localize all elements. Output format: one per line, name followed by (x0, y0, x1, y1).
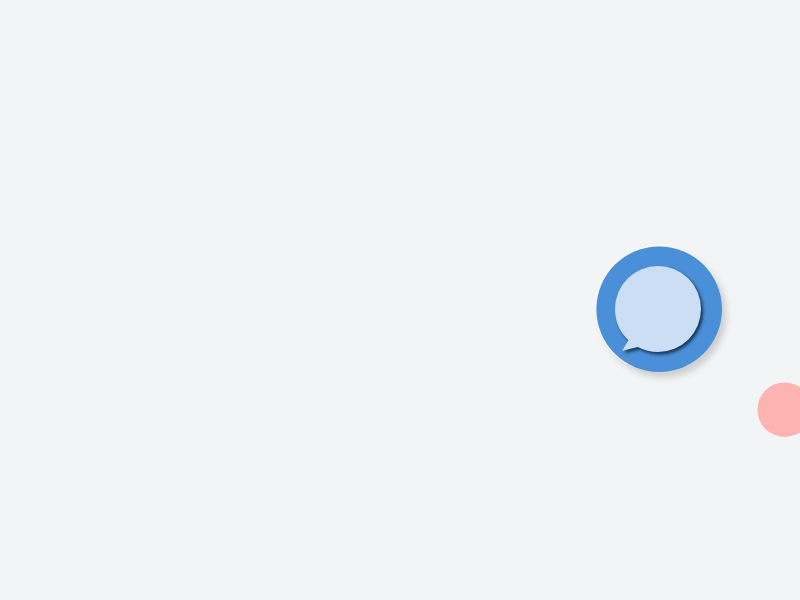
button[interactable]: New message (586, 236, 732, 382)
